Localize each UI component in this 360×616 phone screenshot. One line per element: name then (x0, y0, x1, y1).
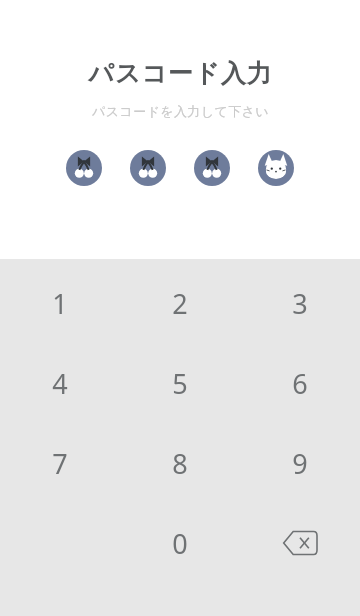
button[interactable]: 3 (240, 263, 360, 343)
button[interactable]: 0 (120, 503, 240, 583)
button[interactable]: 4 (0, 343, 120, 423)
button[interactable]: 7 (0, 423, 120, 503)
staticText: 5 (172, 365, 188, 402)
staticText: パスコードを入力して下さい (92, 103, 269, 119)
button[interactable]: Filled passcode slot (130, 150, 166, 186)
button[interactable]: Delete (240, 503, 360, 583)
staticText: 7 (52, 445, 68, 482)
button[interactable]: 5 (120, 343, 240, 423)
staticText: 8 (172, 445, 188, 482)
staticText: 0 (172, 525, 188, 562)
staticText: 3 (292, 285, 308, 322)
button[interactable]: 6 (240, 343, 360, 423)
button[interactable]: 2 (120, 263, 240, 343)
staticText: パスコード入力 (88, 58, 273, 89)
staticText: 1 (52, 285, 68, 322)
button[interactable]: Filled passcode slot (66, 150, 102, 186)
staticText: 6 (292, 365, 308, 402)
button[interactable]: 1 (0, 263, 120, 343)
staticText: 4 (52, 365, 68, 402)
staticText: 2 (172, 285, 188, 322)
button[interactable]: 9 (240, 423, 360, 503)
button[interactable]: Empty passcode slot (258, 150, 294, 186)
button[interactable]: 8 (120, 423, 240, 503)
staticText: 9 (292, 445, 308, 482)
button[interactable]: Filled passcode slot (194, 150, 230, 186)
